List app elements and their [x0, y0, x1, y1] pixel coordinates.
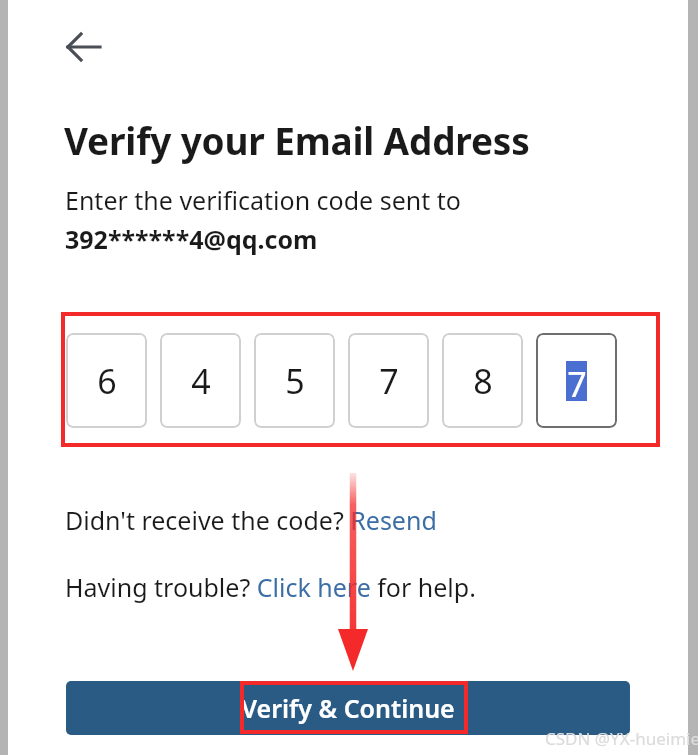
button[interactable]: Code digit 1: [66, 333, 147, 428]
staticText: 8: [473, 358, 493, 404]
button[interactable]: Having trouble? Click here for help.: [65, 570, 476, 604]
staticText: 5: [285, 358, 305, 404]
staticText: Enter the verification code sent to: [65, 183, 461, 217]
button[interactable]: Code digit 4: [348, 333, 429, 428]
staticText: CSDN @YX-hueimie: [545, 727, 698, 750]
staticText: Verify & Continue: [241, 691, 455, 725]
staticText: 7: [379, 358, 399, 404]
staticText: Having trouble? Click here for help.: [65, 570, 476, 604]
staticText: 392******4@qq.com: [65, 222, 318, 256]
button[interactable]: Code digit 6: [536, 333, 617, 428]
staticText: 7: [567, 361, 587, 401]
staticText: 6: [97, 358, 117, 404]
button[interactable]: Code digit 5: [442, 333, 523, 428]
button[interactable]: Code digit 3: [254, 333, 335, 428]
staticText: Didn't receive the code? Resend: [65, 503, 437, 537]
button[interactable]: Verify & Continue: [66, 681, 630, 735]
button[interactable]: Code digit 2: [160, 333, 241, 428]
staticText: Verify your Email Address: [64, 115, 530, 165]
staticText: 4: [191, 358, 211, 404]
button[interactable]: Didn't receive the code? Resend: [65, 503, 437, 537]
button[interactable]: Back: [58, 24, 110, 70]
